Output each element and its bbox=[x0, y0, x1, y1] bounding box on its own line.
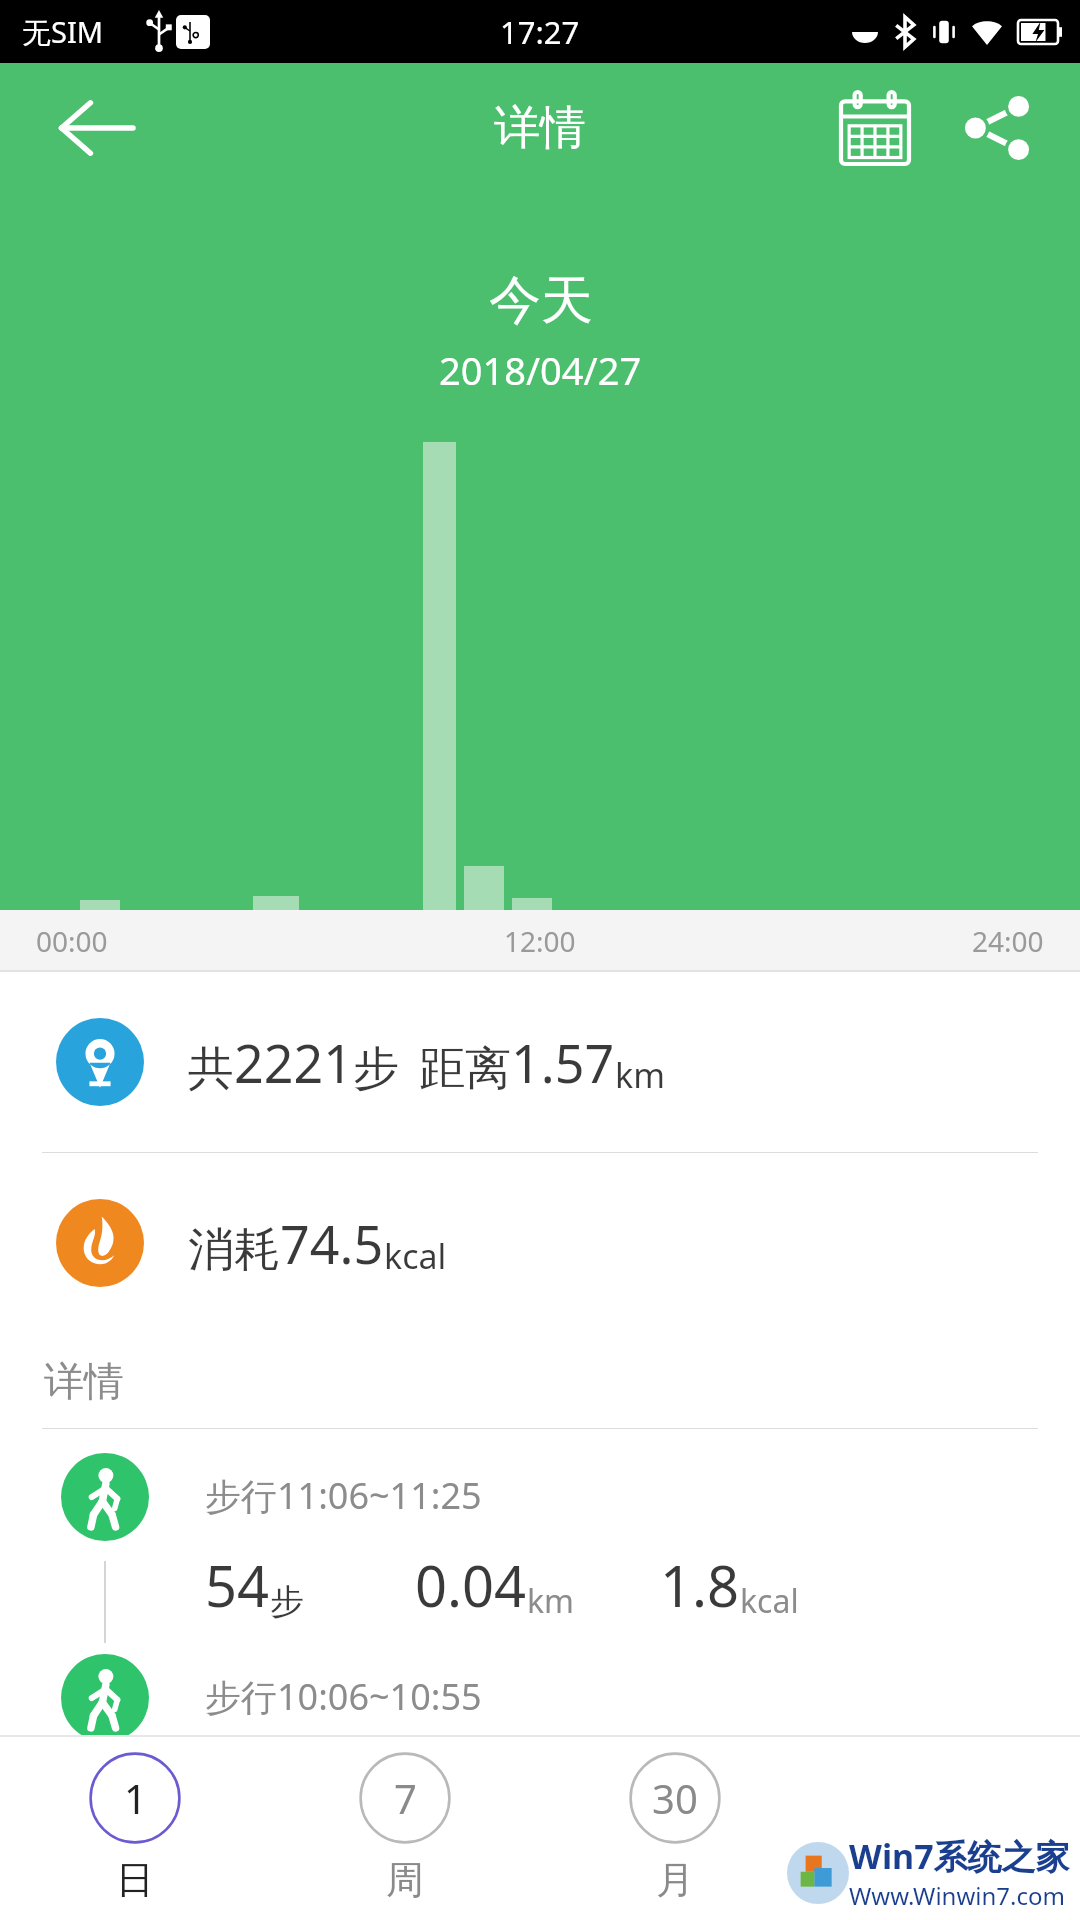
staticText: 步 bbox=[270, 1580, 304, 1623]
staticText: kcal bbox=[384, 1233, 447, 1279]
staticText: km bbox=[615, 1052, 665, 1098]
staticText: 30 bbox=[652, 1771, 698, 1825]
button[interactable]: Back bbox=[40, 73, 150, 183]
staticText: 17:27 bbox=[500, 11, 580, 53]
button[interactable]: 30 bbox=[540, 1735, 810, 1920]
staticText: 共 bbox=[188, 1040, 234, 1098]
staticText: Www.Winwin7.com bbox=[849, 1879, 1065, 1912]
staticText: 2221 bbox=[234, 1027, 353, 1098]
staticText: 1.8 bbox=[660, 1547, 740, 1623]
button[interactable]: 步行11:06~11:25 bbox=[0, 1429, 1080, 1644]
staticText: km bbox=[527, 1579, 575, 1623]
button[interactable]: 1 bbox=[0, 1735, 270, 1920]
button[interactable]: 消耗 bbox=[0, 1153, 1080, 1333]
staticText: Win7系统之家 bbox=[849, 1833, 1070, 1879]
staticText: 步行11:06~11:25 bbox=[205, 1471, 482, 1520]
button[interactable]: 共 bbox=[0, 972, 1080, 1152]
staticText: 无SIM bbox=[22, 12, 104, 52]
staticText: 步行10:06~10:55 bbox=[205, 1672, 482, 1721]
staticText: 月 bbox=[656, 1856, 694, 1904]
staticText: 1 bbox=[124, 1771, 147, 1825]
button[interactable]: Calendar bbox=[832, 85, 918, 171]
staticText: 距离 bbox=[419, 1040, 511, 1098]
staticText: 0.04 bbox=[415, 1547, 527, 1623]
staticText: 今天 bbox=[489, 268, 593, 334]
button[interactable]: Share bbox=[954, 85, 1040, 171]
staticText: 54 bbox=[205, 1547, 270, 1623]
staticText: 消耗 bbox=[188, 1221, 280, 1279]
staticText: 24:00 bbox=[972, 922, 1044, 960]
staticText: 2018/04/27 bbox=[439, 344, 642, 396]
staticText: 步 bbox=[353, 1040, 399, 1098]
staticText: 00:00 bbox=[36, 922, 108, 960]
staticText: 周 bbox=[386, 1856, 424, 1904]
staticText: 7 bbox=[394, 1771, 417, 1825]
staticText: 日 bbox=[116, 1856, 154, 1904]
staticText: 74.5 bbox=[280, 1208, 384, 1279]
staticText: 详情 bbox=[44, 1356, 124, 1406]
button[interactable]: 7 bbox=[270, 1735, 540, 1920]
staticText: 详情 bbox=[494, 99, 586, 157]
staticText: 12:00 bbox=[504, 922, 576, 960]
button[interactable]: 步行10:06~10:55 bbox=[0, 1644, 1080, 1735]
staticText: 1.57 bbox=[511, 1027, 615, 1098]
staticText: kcal bbox=[740, 1579, 799, 1623]
